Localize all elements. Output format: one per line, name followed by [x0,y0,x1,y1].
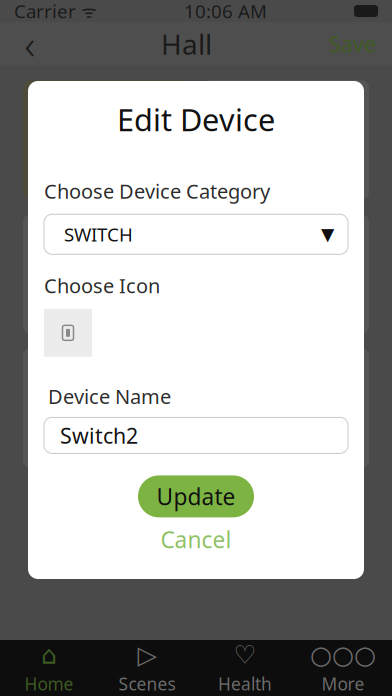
staticText: More [321,672,364,695]
staticText: Save [329,30,376,58]
button[interactable]: Update [138,475,254,517]
staticText: ‹ [24,17,35,70]
staticText: Update [156,481,235,511]
staticText: Home [24,672,73,695]
staticText: 10:06 AM [184,0,267,23]
staticText: ◒ [86,382,126,434]
staticText: Choose Device Category [44,178,270,204]
staticText: Switch2 [60,421,138,449]
button[interactable]: Switch2 [28,417,364,453]
staticText: Hall [161,25,212,63]
staticText: SWITCH [64,222,133,247]
staticText: ⌂ [41,641,57,669]
staticText: Device Name [48,383,171,409]
staticText: ▷ [137,641,156,669]
staticText: ▼ [321,224,334,244]
button[interactable]: Switch icon [44,309,92,357]
button[interactable]: Back [8,22,52,66]
button[interactable]: SWITCH [28,214,364,254]
button[interactable]: Save [321,22,384,66]
staticText: ♡ [233,641,256,669]
staticText: Edit Device [117,99,275,140]
button[interactable]: ♡ [196,640,294,696]
staticText: ○○○ [310,641,376,669]
staticText: Carrier [14,0,76,23]
button[interactable]: ▷ [98,640,196,696]
staticText: Cancel [160,524,231,554]
staticText: Health [218,672,272,695]
staticText: Scenes [118,672,175,695]
staticText: Choose Icon [44,272,160,299]
button[interactable]: Cancel [140,525,251,553]
button[interactable]: ○○○ [294,640,392,696]
staticText: ᯤ [76,0,97,22]
button[interactable]: ⌂ [0,640,98,696]
